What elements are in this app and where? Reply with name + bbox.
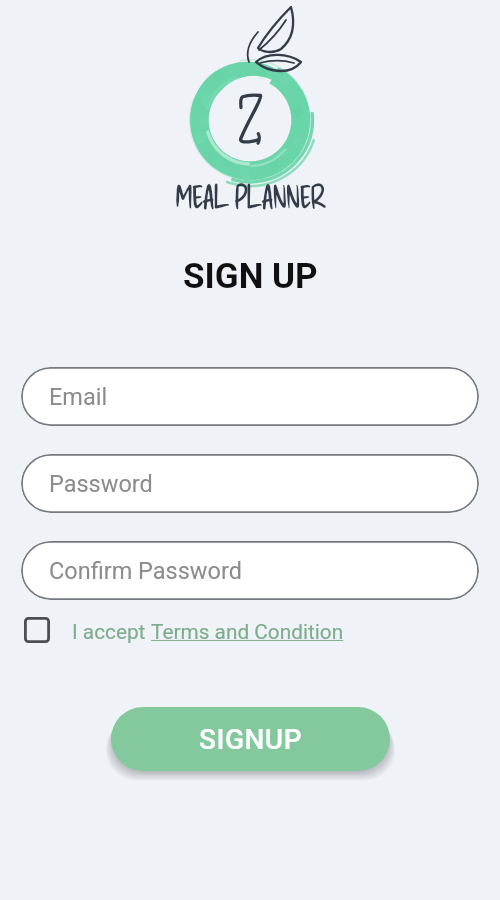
staticText: Confirm Password (49, 557, 242, 585)
button[interactable]: SIGNUP (111, 707, 390, 771)
staticText: Email (49, 383, 108, 411)
button[interactable]: Confirm Password (21, 541, 479, 600)
staticText: MEAL PLANNER (175, 178, 325, 215)
other: Z Meal Planner logo (0, 0, 500, 220)
staticText: Terms and Condition (151, 620, 344, 644)
staticText: Password (49, 470, 153, 498)
button[interactable]: Password (21, 454, 479, 513)
staticText: SIGN UP (183, 256, 318, 297)
staticText: SIGNUP (199, 723, 303, 756)
other: Accept terms checkbox (24, 617, 50, 643)
staticText: I accept (72, 620, 151, 644)
button[interactable]: Accept terms checkbox (22, 617, 344, 647)
button[interactable]: Email (21, 367, 479, 426)
